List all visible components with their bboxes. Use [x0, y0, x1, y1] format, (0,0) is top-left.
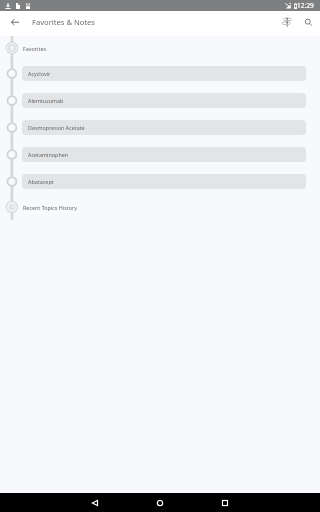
button[interactable]: Acetaminophen: [0, 141, 320, 168]
button[interactable]: Back: [85, 493, 104, 512]
button[interactable]: Home: [150, 493, 169, 512]
button[interactable]: Abatacept: [0, 168, 320, 195]
staticText: Acyclovir: [28, 70, 51, 77]
button[interactable]: Desmopressin Acetate: [0, 114, 320, 141]
button[interactable]: Alemtuzumab: [0, 87, 320, 114]
button[interactable]: Recent Topics History: [0, 195, 320, 219]
button[interactable]: Favorites: [0, 36, 320, 60]
staticText: 12:29: [297, 1, 314, 10]
button[interactable]: Back: [0, 10, 29, 34]
button[interactable]: Filter: [277, 10, 297, 34]
staticText: Favorites: [23, 45, 47, 52]
staticText: Abatacept: [28, 178, 54, 185]
staticText: Recent Topics History: [23, 204, 78, 211]
button[interactable]: Search: [297, 10, 319, 34]
staticText: Desmopressin Acetate: [28, 124, 85, 131]
staticText: Alemtuzumab: [28, 97, 64, 104]
button[interactable]: Acyclovir: [0, 60, 320, 87]
staticText: Favorites & Notes: [32, 17, 95, 27]
staticText: Acetaminophen: [28, 151, 69, 158]
button[interactable]: Recents: [215, 493, 234, 512]
